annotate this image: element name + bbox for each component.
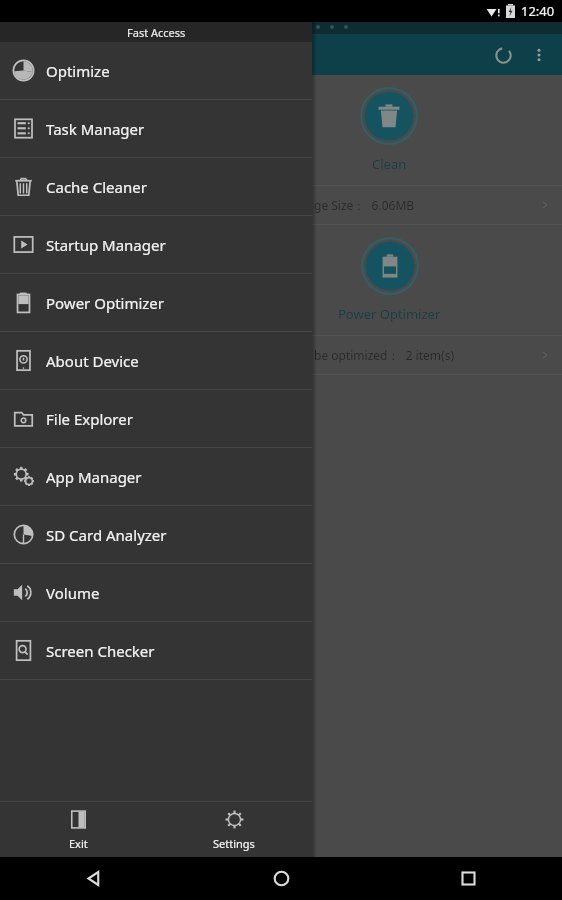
button[interactable]: Refresh [488,40,518,70]
button[interactable]: App Manager [0,448,312,505]
staticText: Startup Manager [46,235,166,255]
button[interactable]: Cache Cleaner [0,158,312,215]
staticText: Task Manager [46,119,145,139]
staticText: Volume [46,583,100,603]
staticText: Screen Checker [46,641,155,661]
button[interactable]: Clean [0,75,562,185]
button[interactable]: Exit [0,802,156,857]
staticText: Power Optimizer [46,293,165,313]
staticText: About Device [46,351,139,371]
button[interactable]: Recent apps [375,857,562,900]
button[interactable]: be optimized： 2 item(s) [0,336,562,374]
staticText: Power Optimizer [338,305,441,323]
staticText: SD Card Analyzer [46,525,167,545]
staticText: File Explorer [46,409,133,429]
button[interactable]: Task Manager [0,100,312,157]
staticText: Settings [213,836,255,851]
button[interactable]: Settings [156,802,312,857]
button[interactable]: More options [526,42,552,68]
button[interactable]: File Explorer [0,390,312,447]
button[interactable]: Power Optimizer [0,225,562,335]
button[interactable]: Volume [0,564,312,621]
button[interactable]: Power Optimizer [0,274,312,331]
staticText: 12:40 [521,2,555,20]
staticText: Fast Access [127,25,186,40]
staticText: Clean [372,155,407,173]
staticText: Optimize [46,61,110,81]
button[interactable]: SD Card Analyzer [0,506,312,563]
button[interactable]: ge Size： 6.06MB [0,186,562,224]
staticText: App Manager [46,467,142,487]
button[interactable]: Home [188,857,375,900]
button[interactable]: Optimize [0,42,312,99]
button[interactable]: About Device [0,332,312,389]
button[interactable]: Screen Checker [0,622,312,679]
staticText: Exit [69,836,88,851]
button[interactable]: Startup Manager [0,216,312,273]
staticText: Cache Cleaner [46,177,147,197]
staticText: be optimized： 2 item(s) [314,347,455,363]
staticText: ge Size： 6.06MB [314,197,415,213]
button[interactable]: Back [0,857,188,900]
